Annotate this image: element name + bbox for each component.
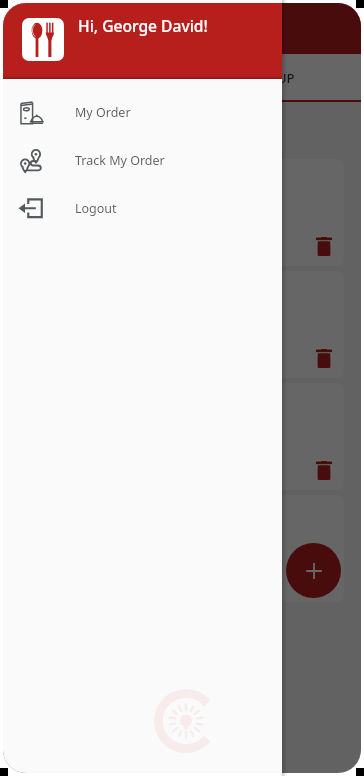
staticText: Track My Order	[75, 152, 165, 169]
button[interactable]: Logout	[3, 184, 282, 232]
button[interactable]: Delete item	[316, 573, 332, 592]
button[interactable]: Delete item	[20, 159, 344, 266]
button[interactable]: Delete item	[316, 461, 332, 480]
staticText: My Order	[75, 104, 131, 121]
button[interactable]: Add item	[286, 543, 341, 598]
button[interactable]: Delete item	[20, 271, 344, 378]
button[interactable]: Delete item	[316, 237, 332, 256]
staticText: Logout	[75, 200, 117, 217]
button[interactable]: Track My Order	[3, 136, 282, 184]
button[interactable]: PICKUP	[182, 54, 361, 102]
button[interactable]: Open navigation menu	[17, 17, 41, 41]
button[interactable]: Delete item	[316, 349, 332, 368]
staticText: Hi, George David!	[78, 15, 208, 36]
button[interactable]: My Order	[3, 88, 282, 136]
staticText: Food Order	[65, 16, 163, 41]
staticText: PICKUP	[248, 69, 295, 87]
button[interactable]: DELIVERY	[3, 54, 182, 102]
button[interactable]: Delete item	[20, 495, 344, 602]
button[interactable]: Delete item	[20, 383, 344, 490]
staticText: DELIVERY	[63, 69, 123, 87]
